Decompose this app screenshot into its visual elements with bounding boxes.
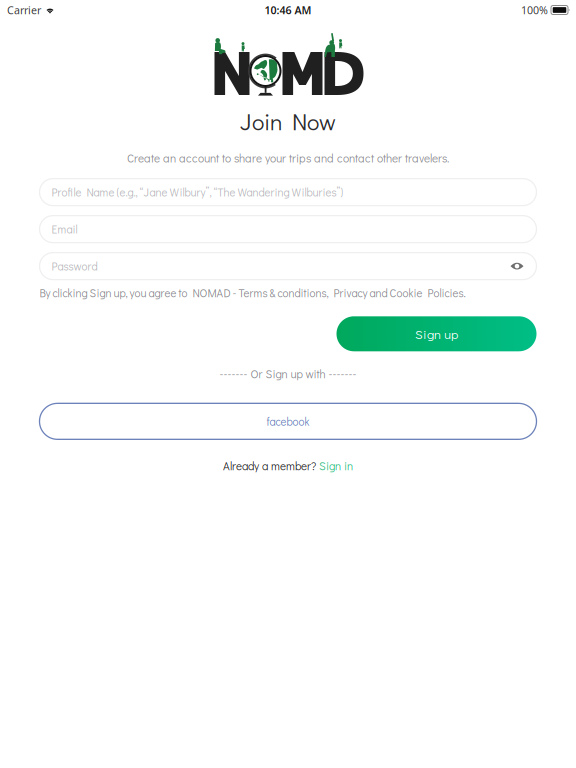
staticText: Join Now [240, 106, 336, 136]
staticText: Already a member? [223, 458, 316, 473]
button[interactable]: Sign up [336, 316, 536, 351]
staticText: Profile Name (e.g., “Jane Wilbury”, “The… [51, 185, 343, 199]
staticText: Sign in [319, 458, 353, 473]
staticText: Create an account to share your trips an… [127, 150, 449, 166]
staticText: By clicking Sign up, you agree to NOMAD … [39, 286, 465, 300]
button[interactable]: Sign in [319, 458, 353, 473]
button[interactable]: Email [39, 216, 536, 243]
button[interactable]: Password [39, 253, 536, 280]
staticText: facebook [266, 414, 309, 429]
staticText: Sign up [415, 325, 458, 342]
button[interactable]: facebook [39, 403, 536, 439]
staticText: 10:46 AM [264, 3, 311, 17]
staticText: Email [51, 222, 77, 236]
staticText: Password [51, 259, 97, 273]
staticText: 100% [521, 3, 548, 17]
staticText: ------- Or Sign up with ------- [219, 366, 356, 381]
button[interactable]: Profile Name (e.g., “Jane Wilbury”, “The… [39, 179, 536, 206]
staticText: Carrier [7, 3, 41, 17]
